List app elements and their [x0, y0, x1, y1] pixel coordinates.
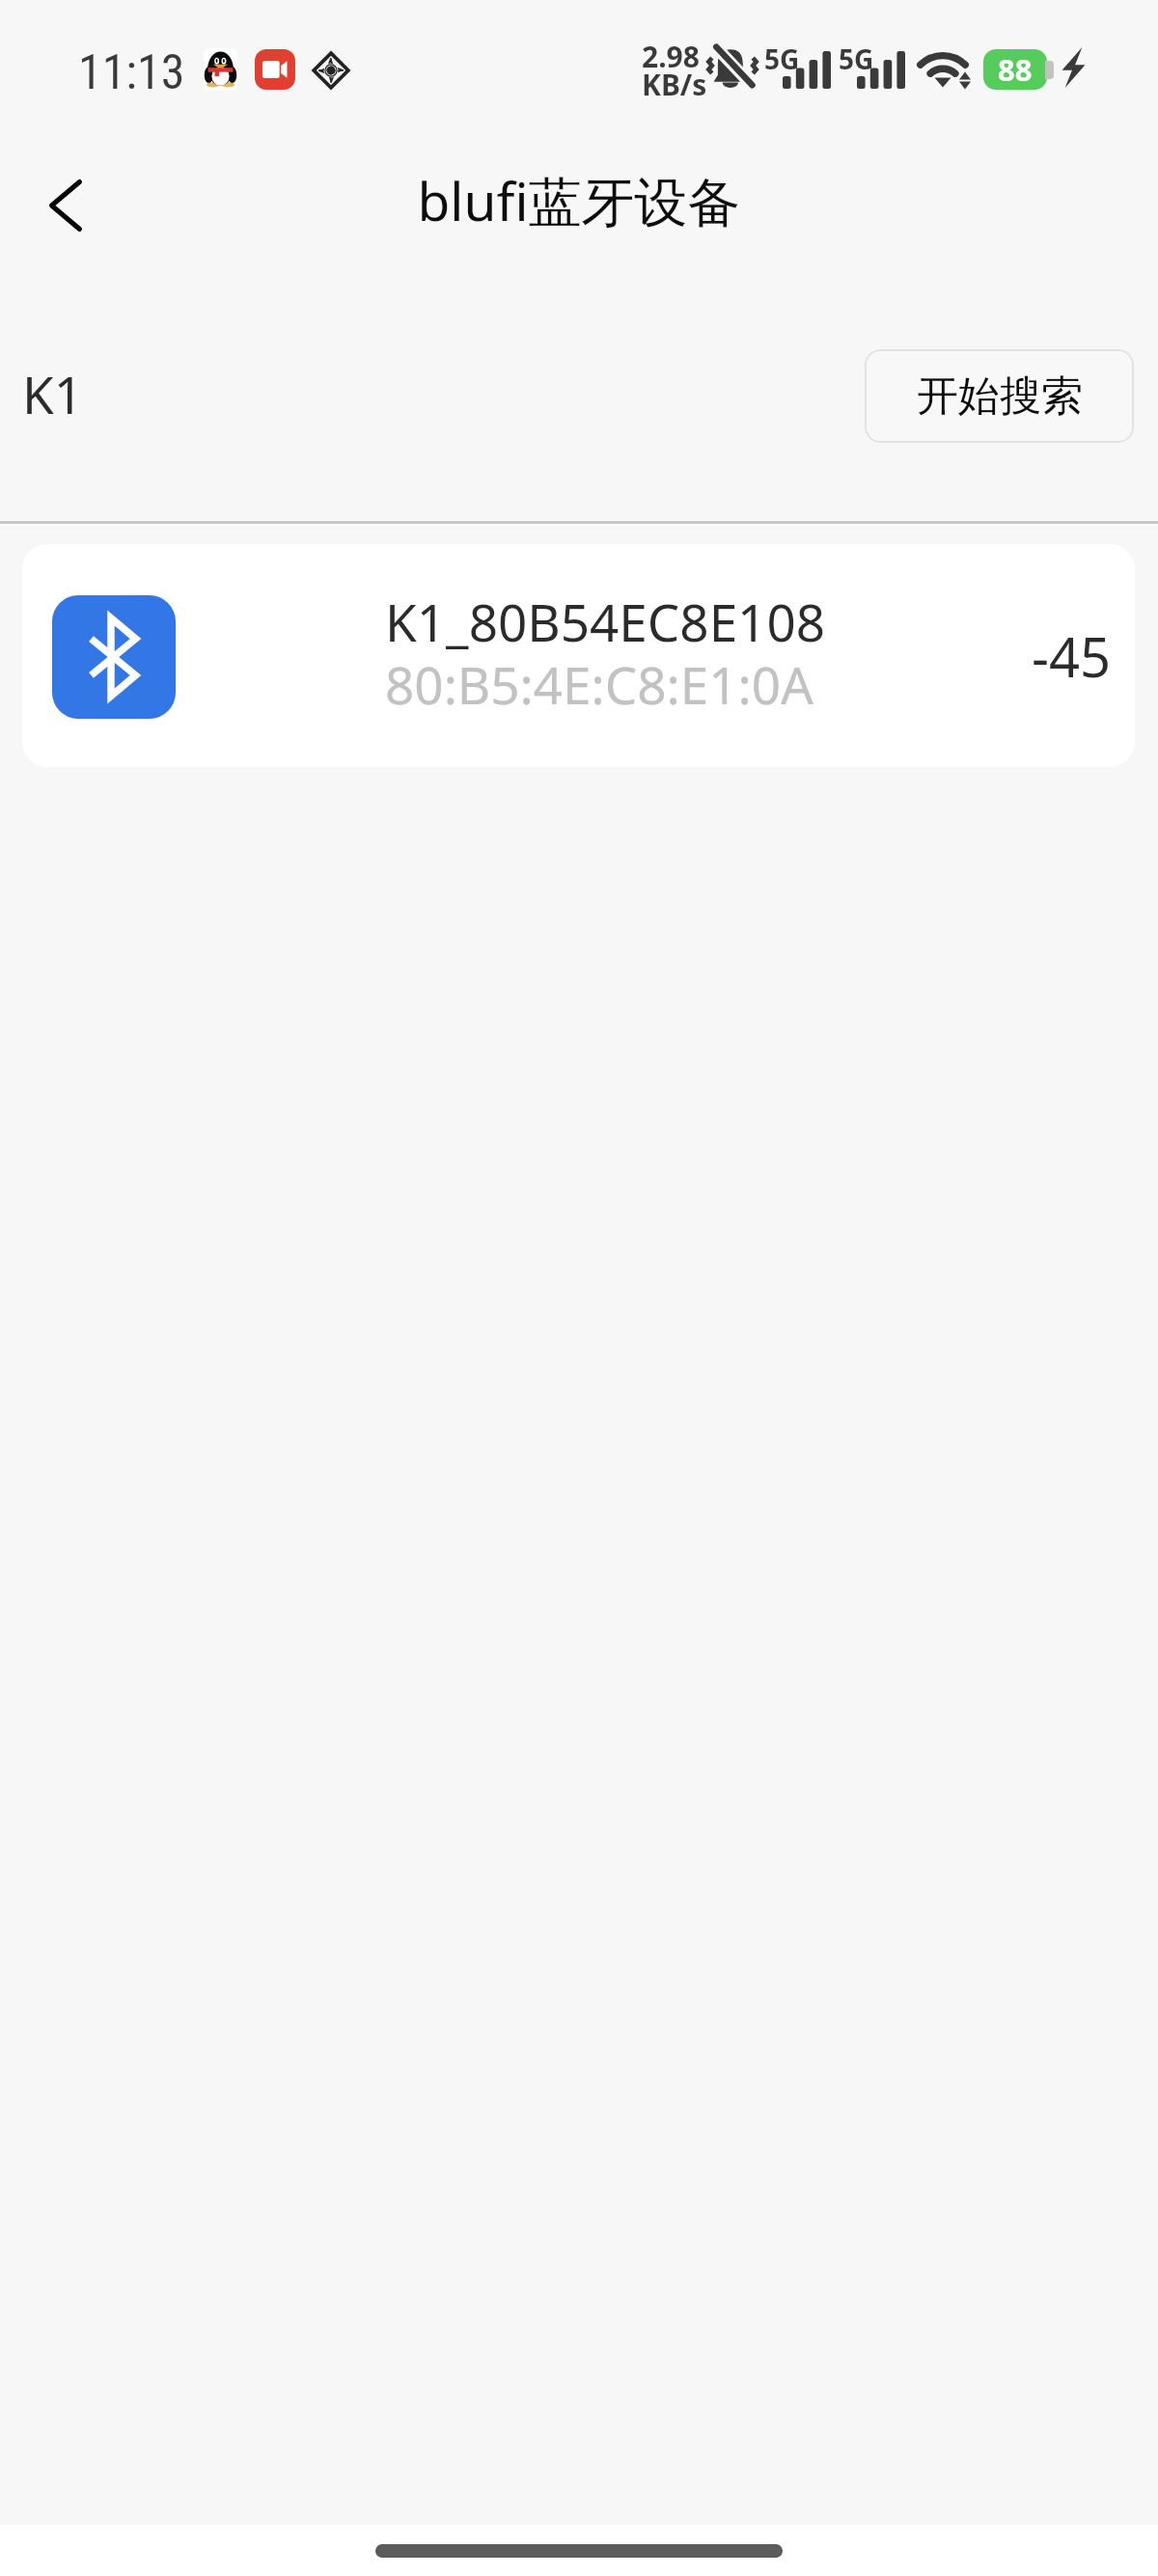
staticText: 开始搜索	[917, 370, 1083, 423]
staticText: -45	[1032, 619, 1112, 693]
staticText: 2.98	[642, 37, 700, 76]
staticText: K1	[22, 359, 84, 428]
button[interactable]: 开始搜索	[865, 349, 1134, 443]
staticText: 5G	[839, 41, 874, 77]
staticText: KB/s	[642, 65, 707, 104]
staticText: K1_80B54EC8E108	[385, 587, 826, 656]
button[interactable]: Back	[14, 154, 117, 257]
button[interactable]: K1_80B54EC8E108	[22, 544, 1135, 767]
staticText: 80:B5:4E:C8:E1:0A	[385, 649, 813, 719]
staticText: blufi蓝牙设备	[417, 164, 741, 236]
staticText: 11:13	[78, 44, 185, 101]
staticText: 88	[998, 49, 1033, 90]
staticText: 5G	[764, 41, 800, 77]
